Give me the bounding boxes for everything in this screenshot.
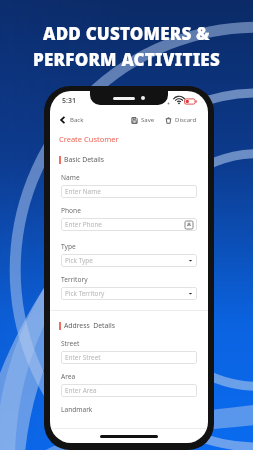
staticText: PERFORM ACTIVITIES (33, 48, 220, 71)
staticText: Name (61, 173, 80, 182)
button[interactable]: Enter Area (61, 384, 197, 397)
staticText: Street (61, 339, 80, 348)
button[interactable]: Enter Street (61, 351, 197, 364)
staticText: Discard (175, 116, 197, 124)
staticText: Address Details (64, 321, 116, 330)
button[interactable]: Save (129, 114, 157, 126)
button[interactable]: Enter Name (61, 185, 197, 198)
button[interactable]: Enter Phone (61, 218, 197, 231)
staticText: Type (61, 242, 76, 251)
staticText: 5:31 (62, 96, 76, 106)
staticText: Pick Type (65, 256, 93, 265)
staticText: Create Customer (59, 134, 119, 144)
staticText: Enter Phone (65, 220, 102, 229)
staticText: Back (70, 116, 84, 124)
staticText: Enter Area (65, 386, 97, 395)
staticText: Phone (61, 206, 81, 215)
button[interactable]: Pick Type (61, 254, 197, 267)
staticText: Pick Territory (65, 289, 105, 298)
staticText: Territory (61, 275, 88, 284)
staticText: Landmark (61, 405, 93, 414)
staticText: Save (141, 116, 155, 124)
staticText: Area (61, 372, 76, 381)
staticText: ADD CUSTOMERS & (43, 22, 210, 45)
button[interactable]: Pick Territory (61, 287, 197, 300)
staticText: Enter Street (65, 353, 101, 362)
staticText: Basic Details (64, 155, 105, 164)
staticText: Enter Name (65, 187, 101, 196)
button[interactable]: Discard (163, 114, 199, 126)
button[interactable]: Back (57, 114, 86, 126)
